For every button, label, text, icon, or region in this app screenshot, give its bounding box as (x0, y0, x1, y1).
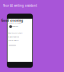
staticText: Draft an email reply (7, 36, 19, 38)
staticText: Brainstorm ideas (7, 39, 19, 41)
staticText: Good evening (1, 19, 23, 22)
staticText: New chat (12, 26, 18, 27)
staticText: Pick up where you left off (6, 22, 22, 24)
staticText: Your AI writing assistant (3, 4, 37, 7)
staticText: Summarize a document (6, 32, 22, 34)
